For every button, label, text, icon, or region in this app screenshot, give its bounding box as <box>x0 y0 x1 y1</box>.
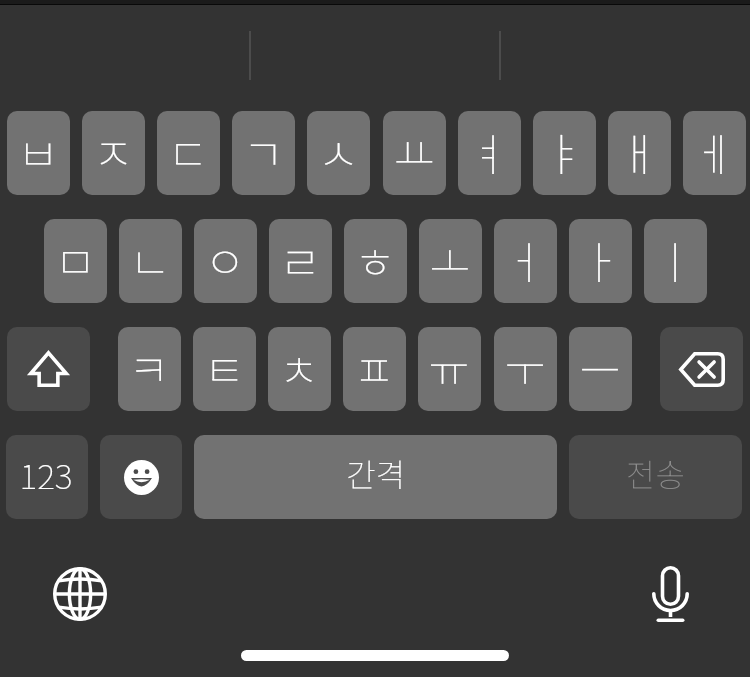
button[interactable]: Shift <box>7 327 90 411</box>
staticText: ㅎ <box>354 227 396 292</box>
staticText: ㅏ <box>579 227 621 292</box>
button[interactable]: Emoji <box>100 435 182 519</box>
staticText: ㅌ <box>203 335 245 400</box>
button[interactable]: ㅂ <box>7 111 70 195</box>
staticText: ㅈ <box>92 119 134 184</box>
button[interactable]: ㅜ <box>494 327 557 411</box>
staticText: ㅗ <box>429 227 471 292</box>
button[interactable]: ㅣ <box>644 219 707 303</box>
button[interactable]: ㅋ <box>118 327 181 411</box>
staticText: ㄷ <box>167 119 209 184</box>
staticText: ㅁ <box>54 227 96 292</box>
button[interactable]: ㅌ <box>193 327 256 411</box>
button[interactable]: ㅁ <box>44 219 107 303</box>
button[interactable]: ㅎ <box>344 219 407 303</box>
button[interactable]: ㅏ <box>569 219 632 303</box>
button[interactable]: ㅍ <box>343 327 406 411</box>
button[interactable]: ㅐ <box>608 111 671 195</box>
staticText: ㅍ <box>353 335 395 400</box>
button[interactable]: ㅡ <box>569 327 632 411</box>
staticText: ㅇ <box>204 227 246 292</box>
staticText: ㅜ <box>504 335 546 400</box>
staticText: ㅐ <box>618 119 660 184</box>
staticText: ㅔ <box>693 119 735 184</box>
staticText: ㄱ <box>242 119 284 184</box>
staticText: ㅠ <box>428 335 470 400</box>
button[interactable]: ㄱ <box>232 111 295 195</box>
staticText: ㄴ <box>129 227 171 292</box>
staticText: ㅊ <box>278 335 320 400</box>
staticText: 간격 <box>346 450 405 496</box>
button[interactable]: ㅈ <box>82 111 145 195</box>
staticText: ㅕ <box>468 119 510 184</box>
button[interactable]: ㅊ <box>268 327 331 411</box>
staticText: ㅑ <box>543 119 585 184</box>
button[interactable]: 간격 <box>194 435 557 519</box>
staticText: ㅣ <box>654 227 696 292</box>
staticText: ㅅ <box>317 119 359 184</box>
staticText: ㅛ <box>393 119 435 184</box>
staticText: ㅋ <box>128 335 170 400</box>
staticText: ㄹ <box>279 227 321 292</box>
button[interactable]: ㅅ <box>307 111 370 195</box>
button[interactable]: Voice input <box>628 552 712 636</box>
staticText: ㅂ <box>17 119 59 184</box>
staticText: ㅡ <box>579 335 621 400</box>
button[interactable]: ㅇ <box>194 219 257 303</box>
staticText: 전송 <box>626 450 685 496</box>
button[interactable]: Backspace <box>660 327 743 411</box>
button[interactable]: ㅗ <box>419 219 482 303</box>
button[interactable]: 123 <box>6 435 88 519</box>
button[interactable]: ㄹ <box>269 219 332 303</box>
button[interactable]: ㅓ <box>494 219 557 303</box>
button[interactable]: ㅠ <box>418 327 481 411</box>
button[interactable]: ㅛ <box>383 111 446 195</box>
button[interactable]: ㄴ <box>119 219 182 303</box>
staticText: 123 <box>19 450 73 499</box>
button[interactable]: ㅑ <box>533 111 596 195</box>
button[interactable]: ㄷ <box>157 111 220 195</box>
staticText: ㅓ <box>504 227 546 292</box>
button[interactable]: ㅔ <box>683 111 746 195</box>
button[interactable]: ㅕ <box>458 111 521 195</box>
button[interactable]: Change keyboard language <box>38 552 122 636</box>
button[interactable]: 전송 <box>569 435 742 519</box>
